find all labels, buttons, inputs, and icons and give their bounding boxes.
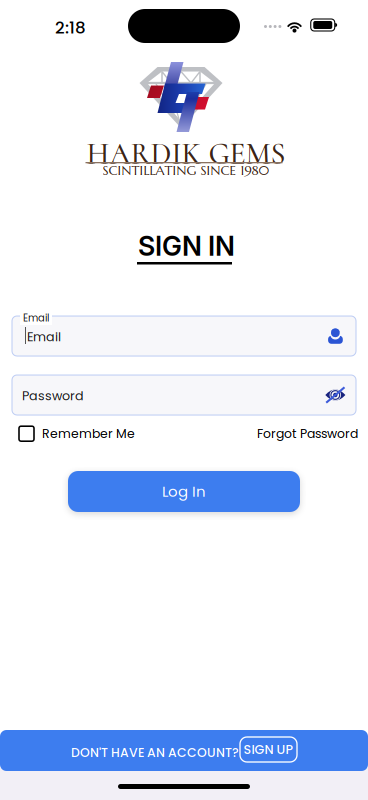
button[interactable]: SIGN UP [240, 737, 297, 762]
staticText: HARDIK GEMS [86, 136, 285, 172]
staticText: SCINTILLATING SINCE 1980 [102, 162, 269, 179]
staticText: SIGN UP [243, 741, 293, 758]
staticText: Log In [162, 481, 206, 502]
staticText: 2:18 [55, 16, 86, 39]
staticText: Password [22, 387, 84, 405]
staticText: Remember Me [42, 425, 135, 442]
staticText: SIGN IN [138, 230, 235, 262]
staticText: DON'T HAVE AN ACCOUNT? [71, 744, 239, 761]
button[interactable]: Show password [12, 375, 33, 392]
button[interactable]: Log In [68, 471, 300, 512]
staticText: Forgot Password [257, 425, 358, 442]
staticText: Email [23, 311, 49, 325]
button[interactable]: Forgot Password [257, 425, 358, 442]
button[interactable]: Remember Me [19, 425, 135, 442]
staticText: Email [27, 328, 61, 346]
